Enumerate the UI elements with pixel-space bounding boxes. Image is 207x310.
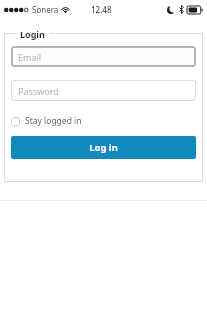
staticText: 12.48 bbox=[91, 4, 112, 15]
staticText: Stay logged in bbox=[25, 115, 82, 127]
button[interactable]: Password bbox=[11, 80, 196, 101]
staticText: Email bbox=[18, 51, 42, 63]
button[interactable]: Email bbox=[11, 46, 196, 67]
staticText: Login bbox=[20, 28, 45, 40]
button[interactable]: Log in bbox=[11, 136, 196, 159]
staticText: Password bbox=[18, 85, 59, 97]
staticText: Sonera bbox=[32, 4, 59, 15]
staticText: Log in bbox=[89, 141, 118, 154]
button[interactable]: Stay logged in bbox=[11, 114, 82, 128]
